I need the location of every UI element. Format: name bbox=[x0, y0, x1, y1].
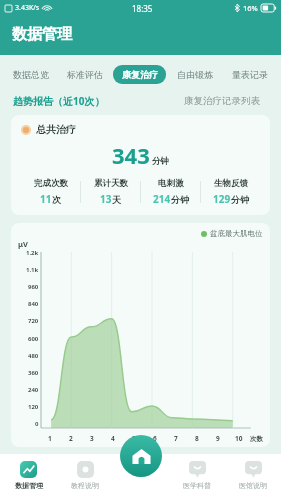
staticText: 次数 bbox=[250, 435, 263, 443]
staticText: 天 bbox=[112, 194, 121, 205]
staticText: 7 bbox=[174, 434, 178, 443]
staticText: 480 bbox=[28, 352, 39, 360]
button[interactable]: 康复治疗 bbox=[113, 65, 166, 84]
staticText: 次 bbox=[52, 194, 61, 205]
staticText: 6 bbox=[153, 434, 157, 443]
staticText: 5 bbox=[132, 434, 136, 443]
staticText: 1 bbox=[48, 434, 52, 443]
staticText: 1.2k bbox=[26, 249, 39, 257]
button[interactable]: 首页 bbox=[120, 435, 162, 477]
staticText: 240 bbox=[28, 386, 39, 394]
button[interactable]: 数据总览 bbox=[5, 65, 57, 84]
staticText: 完成次数 bbox=[34, 178, 68, 189]
staticText: 自由锻炼 bbox=[177, 69, 213, 80]
staticText: 16% bbox=[243, 3, 258, 13]
button[interactable]: 医学科普 bbox=[169, 454, 225, 500]
staticText: 11 bbox=[40, 192, 52, 206]
staticText: 标准评估 bbox=[67, 69, 103, 80]
staticText: 13 bbox=[100, 192, 112, 206]
button[interactable]: 趋势报告（近10次） bbox=[13, 94, 105, 108]
button[interactable]: 教程说明 bbox=[57, 454, 113, 500]
staticText: 120 bbox=[28, 403, 39, 411]
staticText: 教程说明 bbox=[71, 481, 99, 490]
staticText: 840 bbox=[28, 300, 39, 308]
staticText: 分钟 bbox=[171, 194, 189, 205]
staticText: 3 bbox=[90, 434, 94, 443]
staticText: 康复治疗记录列表 bbox=[184, 95, 260, 107]
staticText: 电刺激 bbox=[158, 178, 184, 189]
staticText: 累计天数 bbox=[94, 178, 128, 189]
staticText: 960 bbox=[28, 283, 39, 291]
staticText: 数据总览 bbox=[13, 69, 49, 80]
button[interactable]: 自由锻炼 bbox=[168, 65, 221, 84]
staticText: 盆底最大肌电位 bbox=[210, 229, 263, 238]
staticText: 10 bbox=[235, 434, 243, 443]
staticText: 4 bbox=[111, 434, 115, 443]
button[interactable]: 康复治疗记录列表 bbox=[184, 95, 268, 107]
staticText: 数据管理 bbox=[12, 25, 72, 44]
staticText: 214 bbox=[153, 192, 171, 206]
staticText: 18:35 bbox=[132, 3, 153, 14]
staticText: 1.1k bbox=[26, 266, 39, 274]
staticText: 量表记录 bbox=[232, 69, 268, 80]
staticText: 600 bbox=[28, 335, 39, 343]
staticText: 趋势报告（近10次） bbox=[13, 94, 105, 108]
staticText: 9 bbox=[216, 434, 220, 443]
button[interactable]: 标准评估 bbox=[59, 65, 111, 84]
staticText: 分钟 bbox=[152, 156, 169, 167]
staticText: 0 bbox=[35, 420, 39, 428]
staticText: μV bbox=[18, 239, 28, 249]
staticText: 3.43K/s bbox=[15, 3, 40, 13]
staticText: 2 bbox=[69, 434, 73, 443]
staticText: 康复治疗 bbox=[122, 69, 158, 80]
button[interactable]: 数据管理 bbox=[0, 454, 57, 500]
staticText: 总共治疗 bbox=[36, 123, 76, 136]
staticText: 数据管理 bbox=[15, 481, 43, 490]
staticText: 生物反馈 bbox=[214, 178, 248, 189]
button[interactable]: 医馆说明 bbox=[225, 454, 281, 500]
staticText: 8 bbox=[195, 434, 199, 443]
staticText: 医馆说明 bbox=[239, 481, 267, 490]
button[interactable]: 量表记录 bbox=[223, 65, 276, 84]
staticText: 360 bbox=[28, 369, 39, 377]
staticText: 343 bbox=[112, 140, 150, 170]
staticText: 医学科普 bbox=[183, 481, 211, 490]
staticText: 720 bbox=[28, 317, 39, 325]
staticText: 分钟 bbox=[231, 194, 249, 205]
staticText: 129 bbox=[213, 192, 231, 206]
